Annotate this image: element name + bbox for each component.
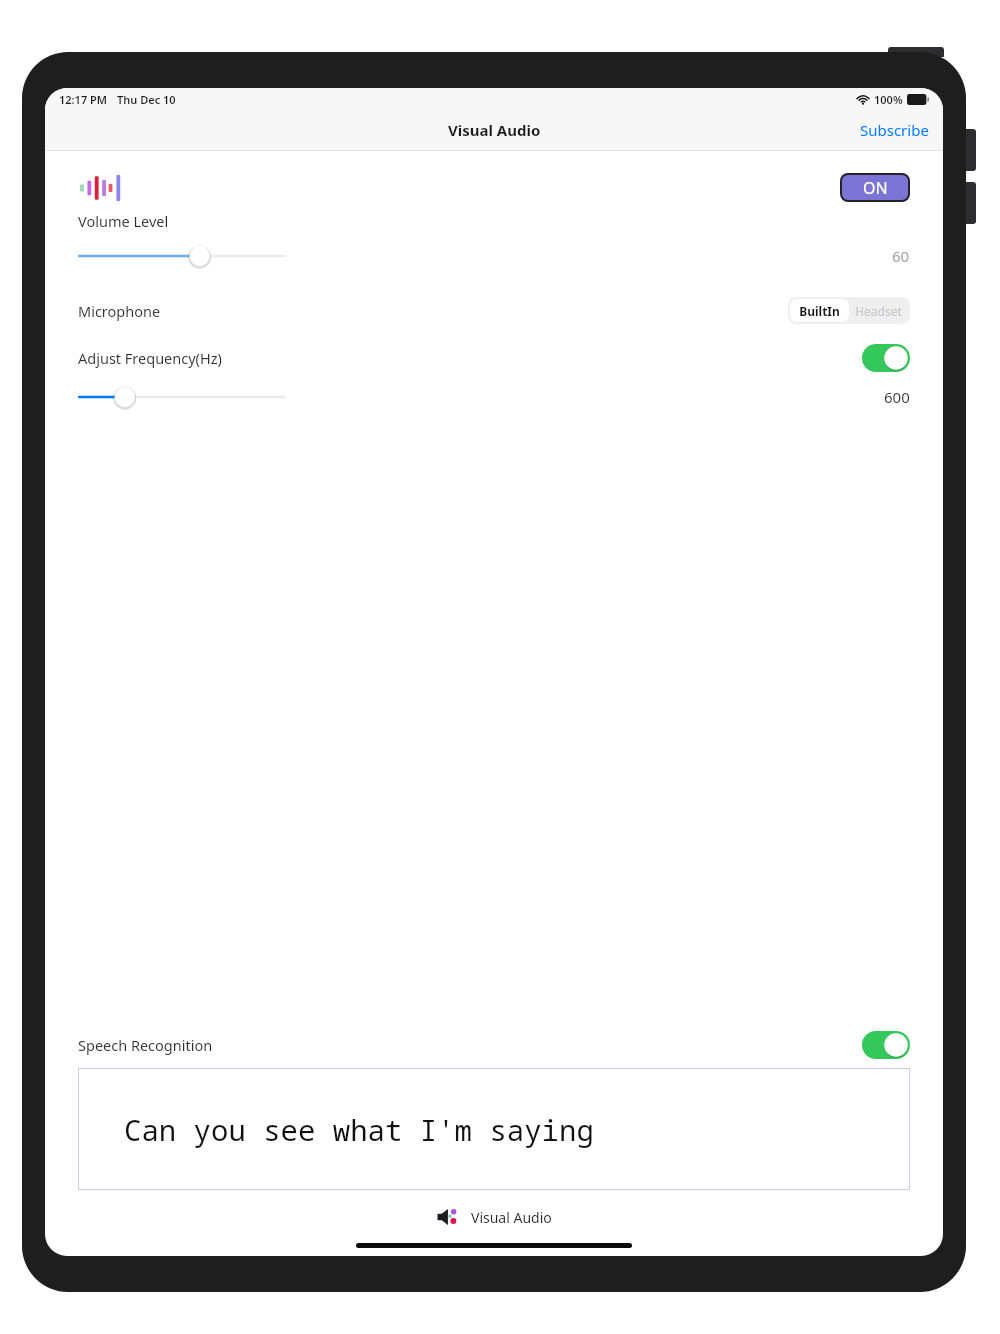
staticText: 600 bbox=[884, 387, 910, 407]
button[interactable]: Subscribe bbox=[846, 112, 943, 148]
button[interactable]: Can you see what I'm saying bbox=[78, 1068, 910, 1190]
staticText: Speech Recognition bbox=[78, 1035, 213, 1055]
staticText: Adjust Frequency(Hz) bbox=[78, 348, 222, 368]
staticText: ON bbox=[863, 177, 888, 199]
button[interactable] bbox=[78, 384, 286, 410]
button[interactable]: Headset bbox=[849, 299, 908, 322]
staticText: BuiltIn bbox=[799, 303, 840, 319]
button[interactable] bbox=[78, 243, 286, 269]
staticText: Thu Dec 10 bbox=[117, 92, 176, 107]
staticText: Subscribe bbox=[860, 120, 929, 140]
button[interactable]: Toggle bbox=[862, 344, 910, 372]
staticText: Microphone bbox=[78, 301, 161, 321]
staticText: 60 bbox=[892, 246, 910, 266]
button[interactable]: BuiltIn bbox=[790, 299, 849, 322]
staticText: Can you see what I'm saying bbox=[124, 1110, 594, 1149]
staticText: Visual Audio bbox=[448, 120, 541, 140]
button[interactable]: Toggle bbox=[862, 1031, 910, 1059]
staticText: 12:17 PM bbox=[59, 92, 108, 107]
staticText: Visual Audio bbox=[471, 1208, 552, 1227]
button[interactable]: Visual Audio bbox=[425, 1203, 564, 1231]
staticText: Volume Level bbox=[78, 211, 169, 231]
staticText: Headset bbox=[855, 303, 902, 319]
button[interactable]: ON bbox=[840, 173, 910, 202]
staticText: 100% bbox=[874, 92, 903, 107]
